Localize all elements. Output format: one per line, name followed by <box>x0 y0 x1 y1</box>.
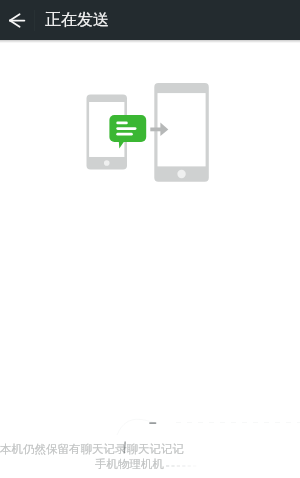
staticText: 本机仍然保留有聊天记录聊天记记记 <box>0 442 184 456</box>
staticText: 手机物理机机 <box>95 457 164 471</box>
button[interactable]: Back <box>0 0 34 40</box>
staticText: 正在发送 <box>45 10 109 30</box>
